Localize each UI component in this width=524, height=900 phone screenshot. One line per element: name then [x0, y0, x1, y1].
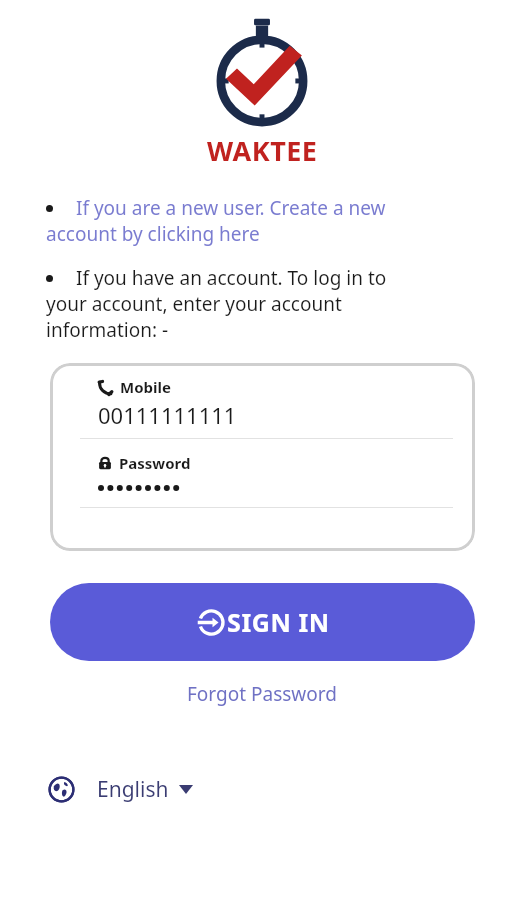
staticText: Forgot Password	[187, 681, 337, 707]
button[interactable]: Change language	[40, 769, 201, 810]
other: Change language	[48, 776, 75, 803]
staticText: account by clicking here	[46, 221, 260, 247]
staticText: your account, enter your account	[46, 291, 342, 317]
staticText: 00111111111	[98, 400, 237, 430]
staticText: SIGN IN	[227, 605, 330, 639]
staticText: information: -	[46, 317, 169, 343]
button[interactable]: Mobile	[50, 363, 475, 438]
staticText: If you have an account. To log in to	[76, 265, 387, 291]
staticText: WAKTEE	[207, 132, 318, 169]
staticText: English	[97, 775, 169, 804]
staticText: Mobile	[120, 377, 171, 397]
button[interactable]: If you are a new user. Create a new	[0, 195, 524, 247]
button[interactable]: Password	[50, 439, 475, 507]
staticText: Password	[119, 453, 191, 473]
button[interactable]: SIGN IN	[50, 583, 475, 661]
button[interactable]: Forgot Password	[175, 675, 349, 713]
staticText: If you are a new user. Create a new	[76, 195, 386, 221]
